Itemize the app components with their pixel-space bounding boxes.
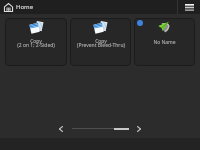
staticText: No Name (153, 39, 176, 46)
staticText: Copy (Prevent Bleed-Thru) (77, 38, 125, 49)
button[interactable]: Home (0, 0, 39, 14)
button[interactable]: No Name (134, 18, 195, 66)
button[interactable]: Next page (135, 123, 143, 134)
button[interactable]: Menu (178, 0, 200, 14)
button[interactable]: Copy (Prevent Bleed-Thru) (70, 18, 131, 66)
staticText: Home (16, 3, 34, 11)
button[interactable]: Copy (2 on 1; 2-Sided) (5, 18, 67, 66)
button[interactable]: Previous page (57, 123, 65, 134)
staticText: Copy (2 on 1; 2-Sided) (17, 38, 55, 49)
